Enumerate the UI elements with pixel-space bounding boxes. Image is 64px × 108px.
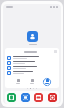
button[interactable]: Save	[42, 77, 52, 86]
button[interactable]: Share	[13, 77, 23, 86]
button[interactable]	[5, 55, 59, 60]
button[interactable]: Gallery	[34, 93, 43, 102]
button[interactable]	[5, 70, 59, 75]
button[interactable]: App	[27, 31, 38, 42]
button[interactable]: Edit	[27, 77, 37, 86]
button[interactable]: Messages	[21, 93, 30, 102]
button[interactable]	[5, 60, 59, 65]
button[interactable]: Phone	[7, 93, 16, 102]
button[interactable]	[5, 65, 59, 70]
button[interactable]: Camera	[48, 93, 57, 102]
